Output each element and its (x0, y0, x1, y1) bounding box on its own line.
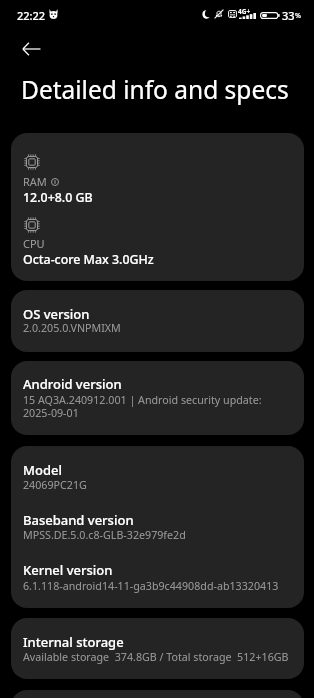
staticText: 24069PC21G (23, 478, 87, 493)
staticText: 2025-09-01 (23, 406, 79, 421)
staticText: Available storage 374.8GB / Total storag… (23, 650, 289, 665)
button[interactable]: Internal storage (11, 618, 304, 679)
staticText: 6.1.118-android14-11-ga3b9c44908dd-ab133… (23, 579, 279, 594)
button[interactable] (11, 690, 304, 698)
staticText: Model (23, 461, 62, 479)
button[interactable]: Model (11, 446, 304, 608)
staticText: Baseband version (23, 511, 134, 529)
staticText: 15 AQ3A.240912.001 | Android security up… (23, 393, 262, 408)
button[interactable]: Android version (11, 361, 304, 435)
button[interactable]: RAM (11, 133, 304, 281)
staticText: Internal storage (23, 633, 124, 651)
staticText: 4G+ (238, 7, 251, 16)
staticText: 2.0.205.0.VNPMIXM (23, 321, 121, 336)
staticText: Android version (23, 375, 122, 393)
staticText: 12.0+8.0 GB (23, 189, 93, 206)
staticText: Kernel version (23, 561, 113, 579)
staticText: CPU (23, 236, 45, 251)
staticText: % (295, 11, 301, 21)
button[interactable]: Back (13, 31, 49, 67)
staticText: OS version (23, 305, 90, 323)
button[interactable]: OS version (11, 290, 304, 352)
staticText: 22:22 (17, 8, 46, 23)
staticText: MPSS.DE.5.0.c8-GLB-32e979fe2d (23, 528, 186, 543)
staticText: 33 (282, 8, 295, 23)
staticText: Detailed info and specs (21, 73, 289, 106)
staticText: RAM (23, 174, 47, 189)
staticText: Octa-core Max 3.0GHz (23, 251, 154, 268)
